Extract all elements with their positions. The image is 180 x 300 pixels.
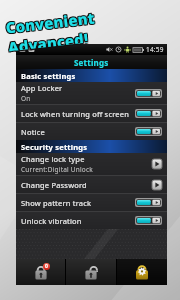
staticText: Change lock type (21, 154, 85, 164)
button[interactable]: App Locker (16, 82, 167, 104)
staticText: App Locker (21, 83, 63, 93)
button[interactable]: Locked apps (16, 259, 65, 285)
button[interactable]: Toggle (135, 109, 162, 118)
button[interactable]: Toggle (135, 127, 162, 136)
staticText: Convenient Advanced! (6, 0, 176, 52)
button[interactable]: Toggle (135, 198, 162, 207)
staticText: Convenient Advanced! (4, 0, 175, 50)
button[interactable]: Open (152, 159, 162, 169)
staticText: Security settings (21, 142, 88, 152)
staticText: Convenient Advanced! (5, 0, 175, 52)
staticText: Notice (21, 127, 45, 137)
staticText: Convenient Advanced! (4, 0, 174, 51)
button[interactable]: Toggle (135, 89, 162, 98)
staticText: Convenient Advanced! (3, 0, 174, 50)
staticText: Convenient Advanced! (5, 0, 176, 50)
staticText: Current:Digital Unlock (21, 165, 93, 174)
button[interactable]: Lock when turning off screen (16, 105, 167, 122)
button[interactable]: Notice (16, 123, 167, 140)
staticText: Lock when turning off screen (21, 109, 130, 119)
button[interactable]: Settings (117, 259, 167, 285)
button[interactable]: Toggle (135, 216, 162, 225)
staticText: Show pattern track (21, 198, 92, 208)
button[interactable]: Open (152, 180, 162, 190)
staticText: On (21, 94, 31, 103)
staticText: Basic settings (21, 71, 76, 81)
button[interactable]: Unlock vibration (16, 212, 167, 229)
button[interactable]: Change Password (16, 176, 167, 193)
button[interactable]: Show pattern track (16, 194, 167, 211)
button[interactable]: Change lock type (16, 153, 167, 175)
staticText: Convenient Advanced! (6, 0, 176, 51)
staticText: 0 (45, 263, 49, 270)
staticText: Convenient Advanced! (5, 0, 175, 51)
staticText: Convenient Advanced! (4, 0, 174, 52)
staticText: Change Password (21, 180, 87, 190)
staticText: Unlock vibration (21, 216, 82, 226)
button[interactable]: Unlocked apps (66, 259, 116, 285)
staticText: 14:59 (146, 45, 164, 54)
staticText: Settings (74, 57, 109, 68)
